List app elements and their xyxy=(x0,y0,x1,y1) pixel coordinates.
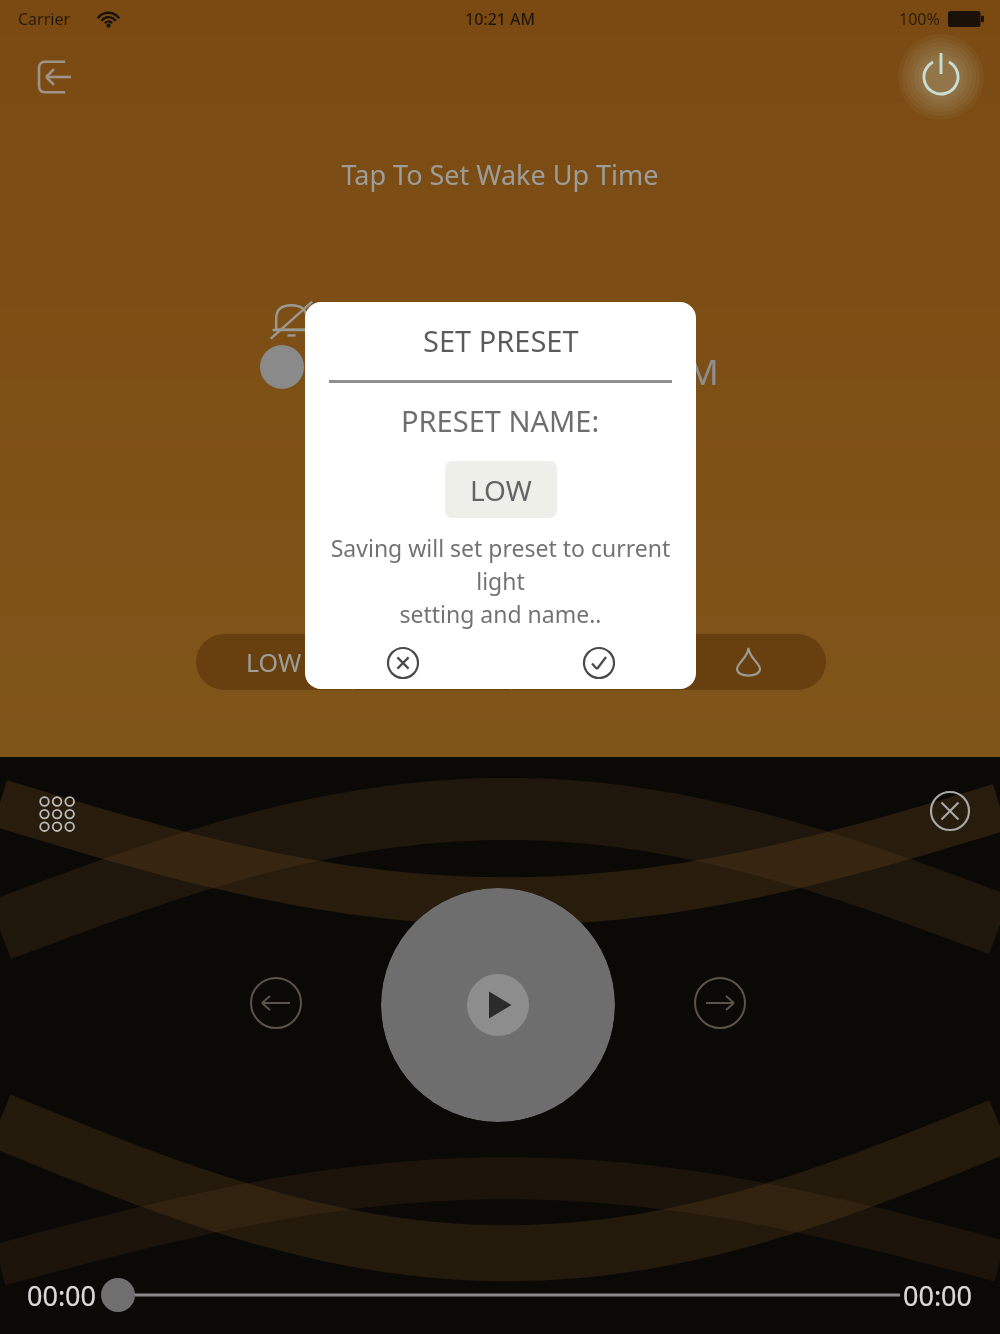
staticText: PRESET NAME: xyxy=(401,401,600,440)
staticText: LOW xyxy=(246,645,302,679)
button[interactable]: Save xyxy=(555,644,642,689)
button[interactable]: Humidity xyxy=(670,634,826,690)
staticText: Carrier xyxy=(18,8,71,30)
button[interactable]: Close xyxy=(927,788,973,834)
button[interactable]: Power xyxy=(908,44,974,110)
staticText: LOW xyxy=(470,471,532,509)
button[interactable] xyxy=(354,634,510,690)
button[interactable] xyxy=(97,1273,903,1317)
button[interactable]: LOW xyxy=(445,461,557,518)
staticText: 10:21 AM xyxy=(465,8,536,30)
button[interactable]: Next xyxy=(692,975,748,1031)
staticText: SET PRESET xyxy=(423,321,579,360)
staticText: 100% xyxy=(899,8,940,30)
button[interactable]: Playlist xyxy=(35,792,79,836)
button[interactable]: Cancel xyxy=(348,644,458,689)
staticText: 00:00 xyxy=(903,1277,973,1314)
button[interactable]: Log out xyxy=(31,53,79,101)
staticText: 00:00 xyxy=(27,1277,97,1314)
button[interactable]: Tap To Set Wake Up Time xyxy=(0,156,1000,193)
button[interactable]: Previous xyxy=(248,975,304,1031)
button[interactable] xyxy=(512,634,668,690)
button[interactable]: LOW xyxy=(196,634,352,690)
staticText: Saving will set preset to current light … xyxy=(317,532,684,630)
staticText: M xyxy=(687,348,719,396)
button[interactable]: Play xyxy=(381,888,615,1122)
